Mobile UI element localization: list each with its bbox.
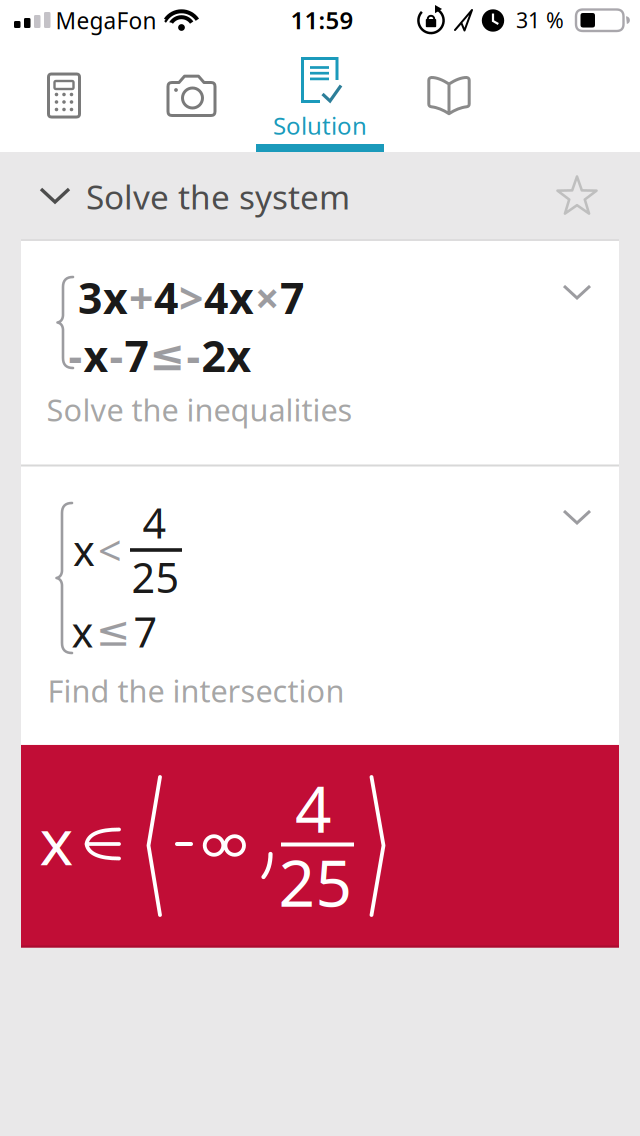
staticText: - — [68, 327, 82, 384]
staticText: - — [186, 327, 200, 384]
staticText: 7 — [124, 327, 148, 384]
staticText: 7 — [133, 604, 157, 659]
staticText: 25 — [131, 550, 179, 604]
staticText: x — [71, 604, 93, 659]
staticText: 3 — [78, 269, 102, 326]
staticText: x — [39, 798, 73, 883]
staticText: > — [179, 269, 203, 326]
staticText: 25 — [278, 839, 352, 924]
staticText: x — [73, 523, 95, 577]
button[interactable]: Camera — [128, 40, 256, 152]
staticText: - — [109, 327, 123, 384]
staticText: < — [98, 523, 122, 577]
staticText: × — [255, 269, 279, 326]
staticText: Solve the system — [86, 174, 350, 219]
staticText: Solve the inequalities — [46, 389, 352, 430]
staticText: x — [226, 327, 251, 384]
staticText: 31 % — [516, 6, 564, 34]
button[interactable]: Show solving steps — [553, 268, 601, 316]
button[interactable]: Collapse Solve the system — [20, 160, 380, 232]
button[interactable]: Favorite — [547, 167, 607, 227]
staticText: Solution — [273, 110, 367, 141]
staticText: 2 — [201, 327, 225, 384]
button[interactable]: Show solving steps — [553, 493, 601, 541]
staticText: x — [83, 327, 108, 384]
staticText: x — [229, 269, 254, 326]
button[interactable]: Solution — [256, 40, 384, 152]
staticText: 4 — [295, 765, 332, 850]
staticText: 4 — [204, 269, 228, 326]
staticText: MegaFon — [55, 5, 156, 35]
staticText: 7 — [280, 269, 304, 326]
staticText: 4 — [154, 269, 178, 326]
button[interactable]: Textbooks — [384, 40, 512, 152]
staticText: 11:59 — [290, 4, 353, 36]
staticText: ≤ — [96, 608, 131, 655]
button[interactable]: Calculator — [0, 40, 128, 152]
staticText: ≤ — [149, 331, 185, 380]
staticText: Find the intersection — [47, 670, 344, 711]
staticText: x — [103, 269, 128, 326]
staticText: 4 — [142, 495, 166, 550]
staticText: + — [129, 269, 153, 326]
